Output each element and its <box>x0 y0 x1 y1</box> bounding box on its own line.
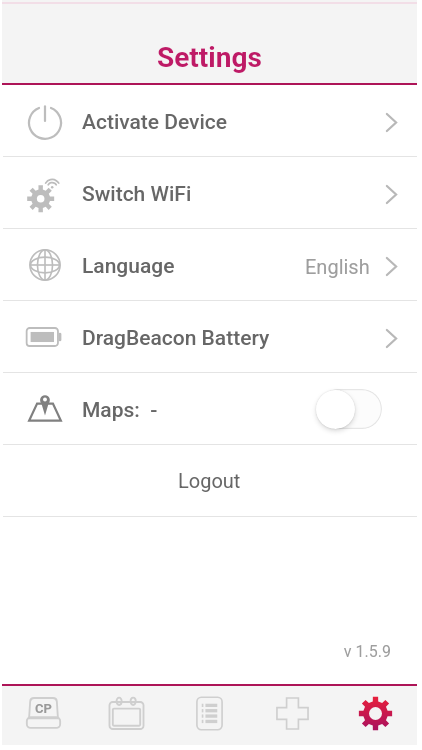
button[interactable]: Add <box>251 686 334 745</box>
staticText: Switch WiFi <box>82 182 192 207</box>
staticText: Logout <box>178 469 241 492</box>
staticText: v 1.5.9 <box>2 642 391 661</box>
button[interactable]: Logout <box>2 445 417 516</box>
staticText: DragBeacon Battery <box>82 326 270 351</box>
button[interactable]: Maps: - <box>2 373 417 444</box>
staticText: Language <box>82 254 175 279</box>
button[interactable]: Activate Device <box>2 85 417 156</box>
staticText: English <box>305 255 370 278</box>
button[interactable]: Language <box>2 229 417 300</box>
staticText: Maps: - <box>82 398 158 423</box>
button[interactable]: Settings <box>334 686 417 745</box>
button[interactable]: Maps toggle <box>316 388 382 430</box>
button[interactable]: Calendar <box>85 686 168 745</box>
button[interactable]: Card <box>2 686 85 745</box>
button[interactable]: List <box>168 686 251 745</box>
staticText: Settings <box>157 41 262 74</box>
staticText: CP <box>35 701 52 716</box>
staticText: Activate Device <box>82 110 228 135</box>
button[interactable]: DragBeacon Battery <box>2 301 417 372</box>
button[interactable]: Switch WiFi <box>2 157 417 228</box>
